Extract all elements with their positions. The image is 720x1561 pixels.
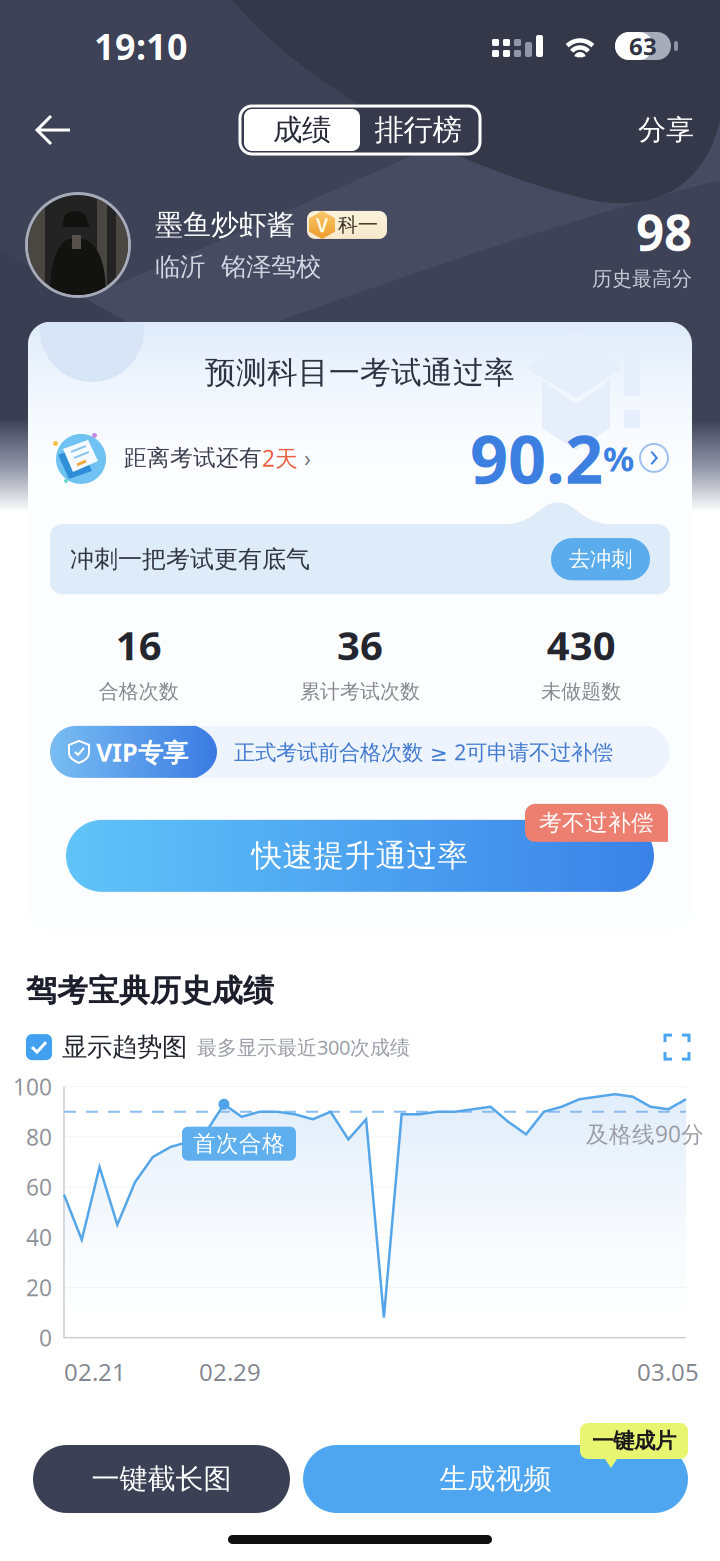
staticText: 科一 [338,213,378,237]
staticText: 36 [337,618,383,671]
staticText: 临沂 铭泽驾校 [155,251,321,282]
staticText: 预测科目一考试通过率 [205,354,515,392]
staticText: 2天 [262,443,298,473]
staticText: 未做题数 [541,679,621,704]
staticText: 距离考试还有 [124,444,262,472]
staticText: 成绩 [273,112,331,148]
button[interactable]: 排行榜 [360,109,476,151]
staticText: V [316,212,328,237]
button[interactable]: 分享 [634,102,698,158]
staticText: 及格线90分 [586,1119,704,1149]
staticText: 430 [547,618,616,671]
staticText: 90.2 [470,414,603,502]
button[interactable]: 显示趋势图 [26,1031,187,1063]
staticText: 60 [26,1172,52,1202]
staticText: 墨鱼炒虾酱 [155,208,295,242]
staticText: 驾考宝典历史成绩 [26,972,274,1010]
staticText: 19:10 [94,22,188,70]
button[interactable]: 去冲刺 [551,538,650,580]
staticText: 分享 [638,113,694,147]
staticText: 排行榜 [374,112,461,148]
staticText: 冲刺一把考试更有底气 [70,544,310,574]
button[interactable]: 快速提升通过率 [66,820,654,892]
staticText: 首次合格 [193,1130,285,1157]
staticText: 显示趋势图 [62,1031,187,1063]
staticText: 最多显示最近300次成绩 [197,1034,410,1060]
staticText: % [603,435,634,481]
staticText: 02.21 [64,1356,126,1388]
button[interactable]: 成绩 [244,109,360,151]
staticText: 正式考试前合格次数 ≥ 2可申请不过补偿 [234,738,613,766]
staticText: 考不过补偿 [539,809,654,837]
staticText: 16 [116,618,162,671]
button[interactable]: 详情 [640,444,668,472]
staticText: 一键成片 [592,1428,676,1454]
button[interactable]: 一键截长图 [33,1445,290,1513]
staticText: 03.05 [637,1356,699,1388]
staticText: VIP专享 [96,735,188,769]
staticText: 02.29 [199,1356,261,1388]
staticText: 63 [629,30,657,62]
staticText: 合格次数 [99,679,179,704]
staticText: 一键截长图 [91,1462,231,1496]
staticText: 快速提升通过率 [251,837,468,875]
button[interactable]: 生成视频 [303,1445,688,1513]
staticText: 0 [39,1323,52,1353]
staticText: 累计考试次数 [300,679,420,704]
staticText: 去冲刺 [569,546,632,572]
staticText: 历史最高分 [592,266,692,291]
button[interactable]: 全屏 [662,1032,692,1062]
staticText: › [298,443,311,473]
staticText: 20 [26,1272,52,1302]
staticText: 100 [13,1072,52,1102]
staticText: 40 [26,1222,52,1252]
staticText: 98 [636,199,692,264]
staticText: 生成视频 [439,1462,551,1496]
staticText: 80 [26,1122,52,1152]
button[interactable]: 返回 [22,102,86,158]
